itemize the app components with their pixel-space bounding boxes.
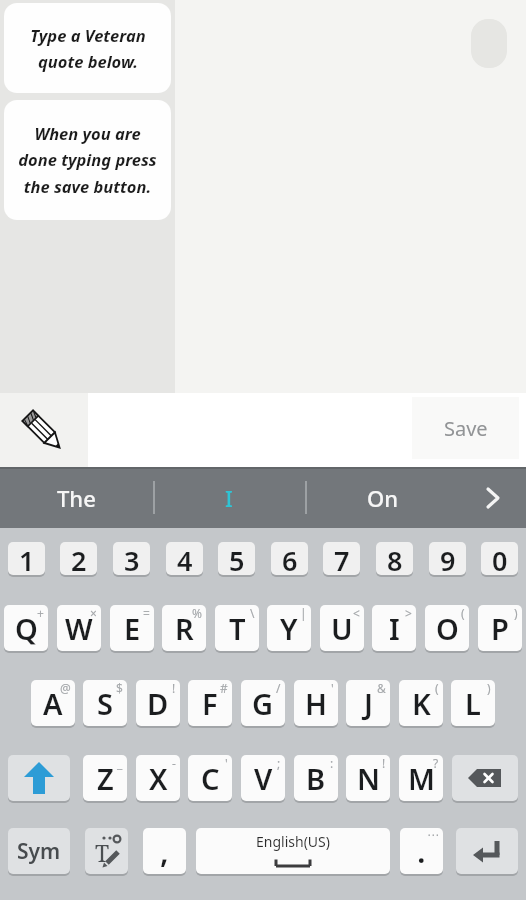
staticText: P — [491, 609, 509, 648]
staticText: . — [417, 830, 426, 872]
staticText: 7 — [334, 542, 350, 575]
button[interactable]: 5 — [218, 542, 255, 575]
button[interactable]: 1 — [8, 542, 45, 575]
button[interactable]: U — [320, 605, 364, 651]
staticText: 5 — [229, 542, 245, 575]
staticText: 3 — [124, 542, 140, 575]
staticText: L — [465, 684, 481, 723]
button[interactable]: S — [83, 680, 127, 726]
staticText: Sym — [17, 837, 61, 866]
button[interactable]: J — [346, 680, 390, 726]
staticText: 4 — [177, 542, 193, 575]
staticText: O — [436, 609, 459, 648]
button[interactable]: C — [188, 755, 232, 801]
button[interactable]: X — [136, 755, 180, 801]
button[interactable]: R — [162, 605, 206, 651]
staticText: ; — [277, 755, 281, 771]
staticText: E — [124, 609, 141, 648]
button[interactable]: P — [478, 605, 522, 651]
button[interactable]: . — [400, 828, 443, 874]
staticText: Y — [280, 609, 298, 648]
staticText: A — [43, 684, 63, 723]
button[interactable]: M — [399, 755, 443, 801]
button[interactable]: 7 — [323, 542, 360, 575]
button[interactable]: Y — [267, 605, 311, 651]
staticText: U — [331, 609, 353, 648]
staticText: $ — [116, 680, 123, 696]
button[interactable]: English(US) — [196, 828, 390, 874]
button[interactable]: On — [305, 467, 460, 528]
staticText: English(US) — [256, 832, 330, 851]
button[interactable]: T — [215, 605, 259, 651]
button[interactable] — [456, 828, 518, 874]
staticText: C — [201, 759, 220, 798]
button[interactable]: W — [57, 605, 101, 651]
staticText: ) — [514, 605, 518, 621]
button[interactable] — [452, 755, 518, 801]
staticText: I — [389, 609, 400, 648]
button[interactable]: I — [372, 605, 416, 651]
button[interactable]: 3 — [113, 542, 150, 575]
button[interactable]: K — [399, 680, 443, 726]
button[interactable]: 4 — [166, 542, 203, 575]
staticText: Type a Veteran quote below. — [30, 24, 146, 73]
button[interactable]: G — [241, 680, 285, 726]
staticText: W — [65, 609, 93, 648]
button[interactable]: 8 — [376, 542, 413, 575]
staticText: ! — [172, 680, 176, 696]
button[interactable] — [0, 393, 88, 467]
staticText: ' — [331, 680, 334, 696]
button[interactable] — [8, 755, 70, 801]
staticText: 2 — [71, 542, 87, 575]
staticText: R — [175, 609, 194, 648]
button[interactable]: E — [110, 605, 154, 651]
button[interactable]: F — [188, 680, 232, 726]
button[interactable]: 9 — [429, 542, 466, 575]
staticText: @ — [60, 680, 71, 696]
button[interactable]: D — [136, 680, 180, 726]
staticText: V — [254, 759, 273, 798]
staticText: S — [97, 684, 113, 723]
button[interactable]: Z — [83, 755, 127, 801]
staticText: , — [160, 830, 169, 872]
button[interactable]: H — [294, 680, 338, 726]
button[interactable]: 0 — [481, 542, 518, 575]
button[interactable]: B — [294, 755, 338, 801]
button[interactable]: Sym — [8, 828, 70, 874]
staticText: | — [300, 605, 307, 621]
staticText: ? — [433, 755, 439, 771]
button[interactable]: T — [85, 828, 128, 874]
staticText: Save — [444, 415, 488, 442]
button[interactable]: 6 — [271, 542, 308, 575]
staticText: 9 — [440, 542, 456, 575]
button[interactable]: V — [241, 755, 285, 801]
button[interactable]: O — [425, 605, 469, 651]
staticText: D — [147, 684, 169, 723]
staticText: \ — [250, 605, 255, 621]
button[interactable]: L — [451, 680, 495, 726]
staticText: When you are done typing press the save … — [18, 122, 157, 198]
staticText: _ — [117, 755, 123, 771]
staticText: % — [192, 605, 202, 621]
staticText: 6 — [282, 542, 298, 575]
button[interactable]: 2 — [60, 542, 97, 575]
staticText: I — [225, 483, 233, 513]
button[interactable]: , — [143, 828, 186, 874]
staticText: G — [252, 684, 274, 723]
staticText: J — [364, 684, 373, 723]
button[interactable] — [460, 467, 526, 528]
button[interactable]: The — [0, 467, 153, 528]
button[interactable]: N — [346, 755, 390, 801]
staticText: > — [405, 605, 412, 621]
staticText: B — [306, 759, 326, 798]
staticText: ' — [225, 755, 228, 771]
staticText: ⋯ — [427, 828, 439, 842]
button[interactable]: Q — [4, 605, 48, 651]
button[interactable]: I — [153, 467, 305, 528]
button[interactable]: A — [31, 680, 75, 726]
staticText: ( — [435, 680, 439, 696]
staticText: & — [377, 680, 386, 696]
staticText: < — [353, 605, 360, 621]
staticText: # — [220, 680, 228, 696]
button[interactable]: Save — [412, 397, 519, 459]
